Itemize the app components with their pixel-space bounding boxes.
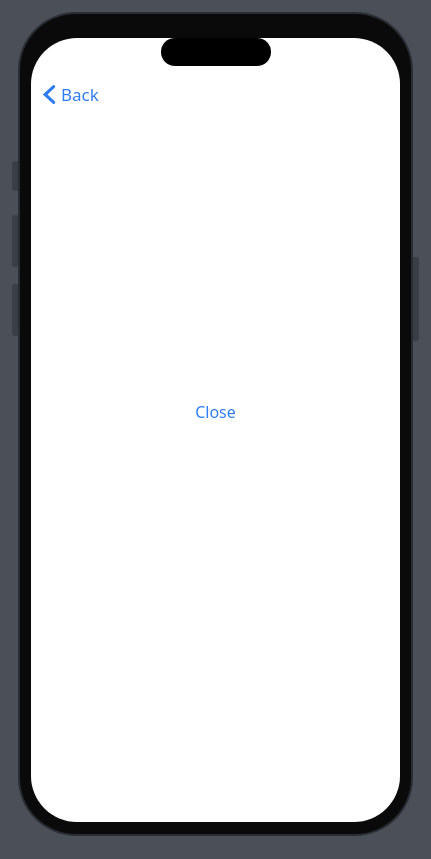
staticText: Back	[61, 83, 99, 106]
other: Back	[44, 85, 55, 104]
button[interactable]: Close	[183, 393, 248, 431]
button[interactable]: Back	[37, 78, 106, 111]
staticText: Close	[195, 401, 236, 423]
